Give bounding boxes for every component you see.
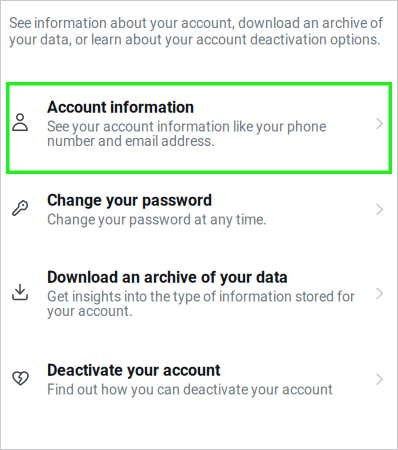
staticText: Find out how you can deactivate your acc… xyxy=(47,382,333,398)
button[interactable]: Download an archive of your data xyxy=(0,264,398,357)
staticText: Account information xyxy=(47,98,194,117)
staticText: Get insights into the type of informatio… xyxy=(47,289,355,319)
staticText: Deactivate your account xyxy=(47,361,220,380)
staticText: See your account information like your p… xyxy=(47,119,326,149)
button[interactable]: Account information xyxy=(0,94,398,187)
staticText: Change your password xyxy=(47,191,212,210)
staticText: Download an archive of your data xyxy=(47,268,288,287)
button[interactable]: Change your password xyxy=(0,187,398,264)
staticText: Change your password at any time. xyxy=(47,212,267,228)
staticText: See information about your account, down… xyxy=(9,15,383,48)
button[interactable]: Deactivate your account xyxy=(0,357,398,434)
